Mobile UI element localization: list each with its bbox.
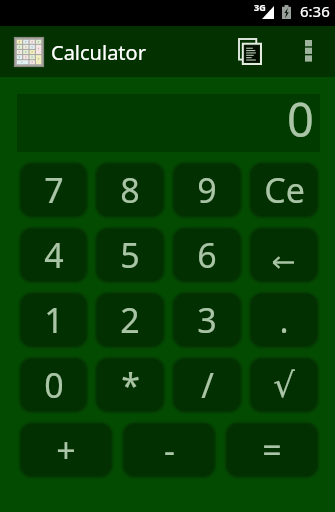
staticText: 0 (287, 87, 314, 145)
staticText: - (164, 427, 175, 473)
button[interactable]: 4 (21, 229, 86, 281)
staticText: . (279, 297, 289, 343)
button[interactable]: + (21, 424, 111, 476)
button[interactable]: * (97, 359, 163, 411)
button[interactable]: / (174, 359, 240, 411)
staticText: 9 (197, 167, 217, 213)
staticText: 7 (44, 167, 64, 213)
button[interactable]: √ (251, 359, 317, 411)
staticText: 0 (44, 362, 64, 408)
staticText: 1 (44, 297, 64, 343)
staticText: Calculator (51, 39, 146, 66)
button[interactable]: 2 (97, 294, 163, 346)
button[interactable]: 7 (21, 164, 86, 216)
button[interactable]: ← (251, 229, 317, 281)
button[interactable]: Copy (229, 26, 271, 77)
button[interactable]: Ce (251, 164, 317, 216)
button[interactable]: - (124, 424, 214, 476)
button[interactable]: 1 (21, 294, 86, 346)
staticText: Ce (264, 167, 305, 213)
staticText: = (262, 427, 282, 473)
staticText: 6:36 (300, 1, 330, 21)
staticText: 3 (197, 297, 217, 343)
staticText: 3G (254, 1, 266, 13)
staticText: 5 (120, 232, 140, 278)
button[interactable]: 8 (97, 164, 163, 216)
button[interactable]: 9 (174, 164, 240, 216)
staticText: 8 (120, 167, 140, 213)
staticText: / (201, 362, 214, 408)
staticText: + (56, 427, 76, 473)
staticText: 2 (120, 297, 140, 343)
staticText: * (121, 362, 140, 408)
button[interactable]: 0 (21, 359, 86, 411)
button[interactable]: 5 (97, 229, 163, 281)
button[interactable]: = (227, 424, 317, 476)
staticText: √ (273, 365, 295, 405)
button[interactable]: . (251, 294, 317, 346)
button[interactable]: 3 (174, 294, 240, 346)
button[interactable]: More options (293, 26, 323, 77)
button[interactable]: 6 (174, 229, 240, 281)
staticText: 6 (197, 232, 217, 278)
staticText: 4 (44, 232, 64, 278)
